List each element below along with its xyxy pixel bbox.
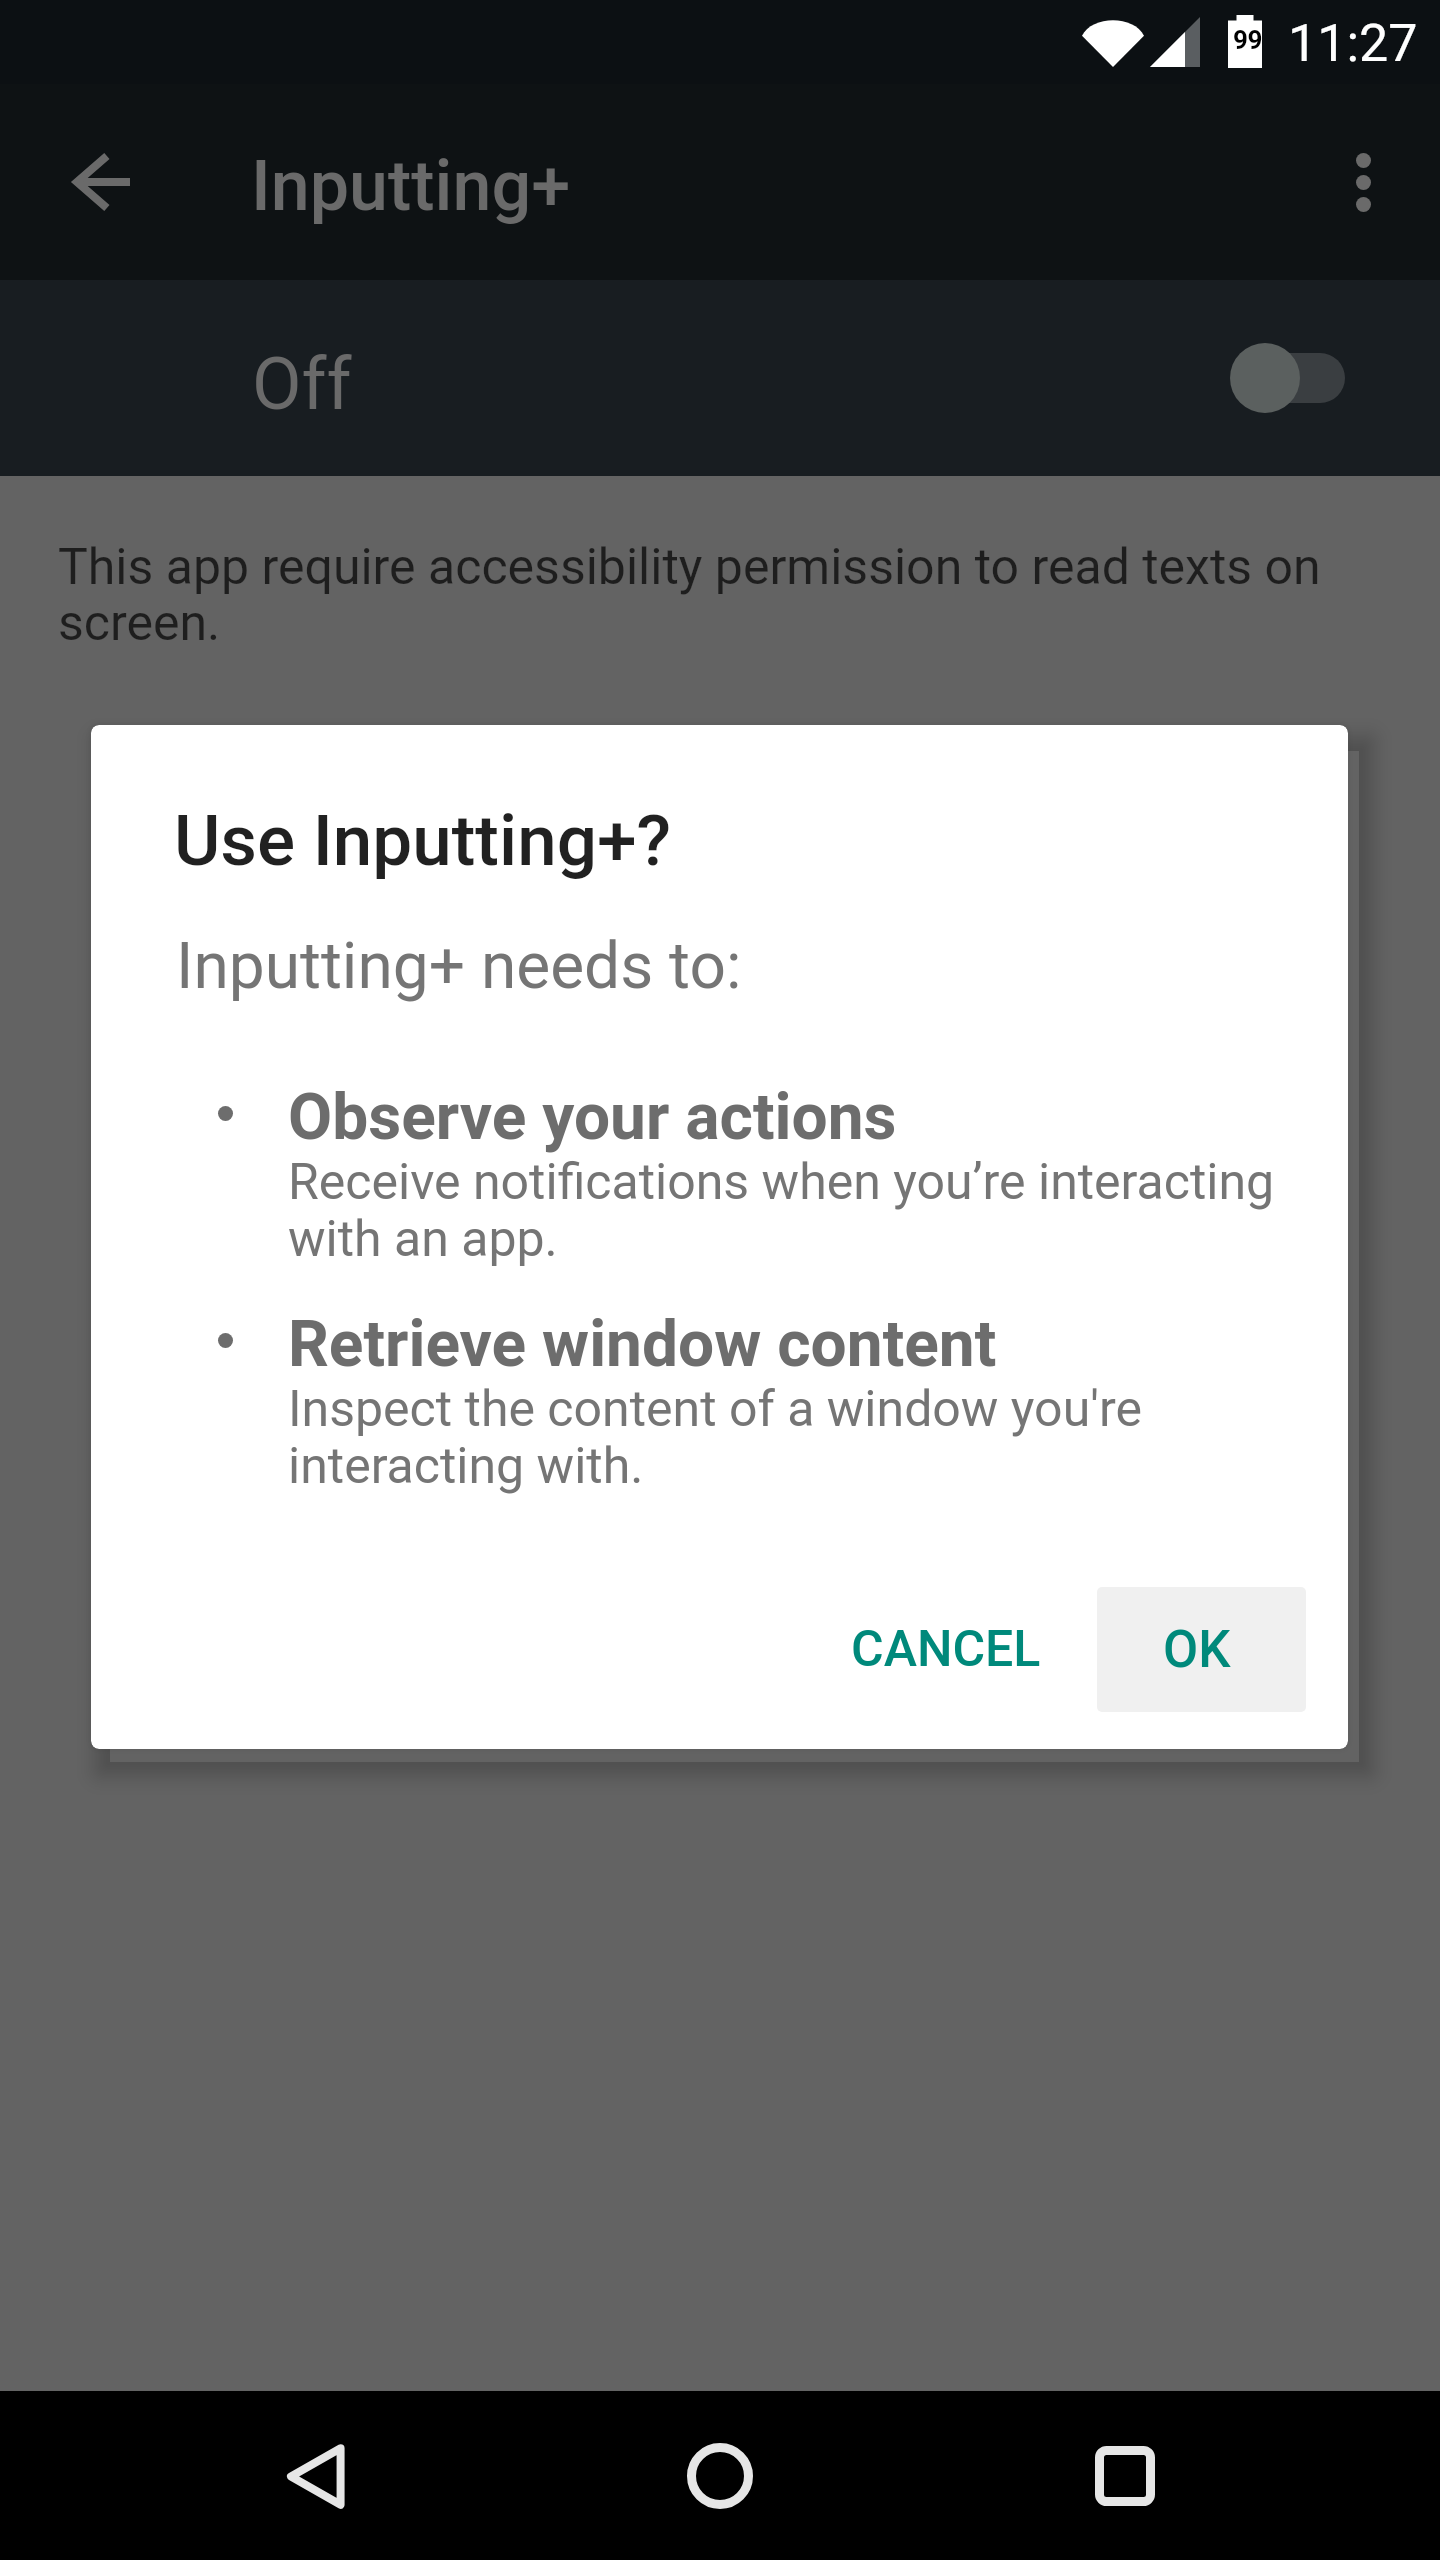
staticText: This app require accessibility permissio…	[58, 538, 1360, 653]
staticText: Observe your actions	[288, 1080, 897, 1155]
staticText: 99	[1233, 25, 1262, 55]
button[interactable]: Home	[650, 2406, 790, 2546]
staticText: Retrieve window content	[288, 1307, 997, 1382]
staticText: Inputting+	[251, 145, 571, 227]
button[interactable]: Back	[245, 2406, 385, 2546]
button[interactable]: Toggle accessibility service	[1227, 318, 1351, 438]
button[interactable]: Navigate up	[47, 127, 157, 237]
button[interactable]: CANCEL	[831, 1587, 1061, 1712]
staticText: Inspect the content of a window you're i…	[288, 1380, 1298, 1495]
button[interactable]: Recent apps	[1055, 2406, 1195, 2546]
staticText: 11:27	[1288, 13, 1418, 74]
button[interactable]: OK	[1097, 1587, 1306, 1712]
staticText: Off	[252, 342, 352, 426]
staticText: Use Inputting+?	[174, 799, 672, 882]
staticText: Inputting+ needs to:	[176, 929, 742, 1004]
button[interactable]: Off	[0, 280, 1440, 476]
staticText: OK	[1163, 1620, 1231, 1680]
button[interactable]: More options	[1310, 129, 1416, 235]
staticText: Receive notifications when you’re intera…	[288, 1153, 1298, 1268]
staticText: CANCEL	[851, 1620, 1041, 1679]
